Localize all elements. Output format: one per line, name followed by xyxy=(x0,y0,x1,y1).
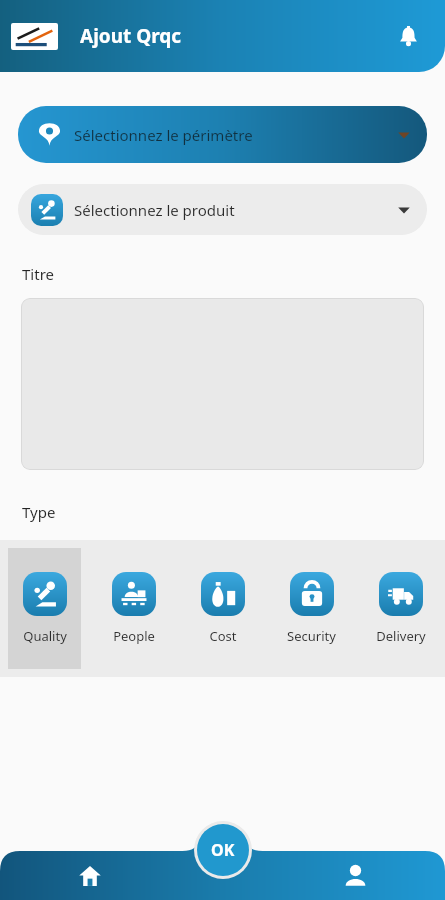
button[interactable]: Notifications xyxy=(387,15,429,57)
staticText: Cost xyxy=(209,627,237,645)
staticText: Ajout Qrqc xyxy=(80,23,182,49)
button[interactable]: Delivery xyxy=(364,548,437,669)
button[interactable]: Sélectionnez le produit xyxy=(18,184,427,235)
staticText: Type xyxy=(22,502,56,522)
button[interactable]: Sélectionnez le périmètre xyxy=(18,106,427,163)
staticText: OK xyxy=(211,839,235,861)
staticText: Sélectionnez le produit xyxy=(74,200,235,220)
button[interactable]: Profile xyxy=(265,851,445,900)
button[interactable]: Home xyxy=(0,851,180,900)
staticText: Titre xyxy=(22,264,54,284)
staticText: Quality xyxy=(23,627,67,645)
staticText: Security xyxy=(287,627,336,645)
staticText: Sélectionnez le périmètre xyxy=(74,125,253,145)
staticText: Delivery xyxy=(376,627,426,645)
button[interactable]: OK xyxy=(197,824,249,876)
staticText: People xyxy=(113,627,155,645)
button[interactable]: Cost xyxy=(186,548,259,669)
button[interactable]: Quality xyxy=(8,548,81,669)
button[interactable]: People xyxy=(97,548,170,669)
button[interactable]: Security xyxy=(275,548,348,669)
